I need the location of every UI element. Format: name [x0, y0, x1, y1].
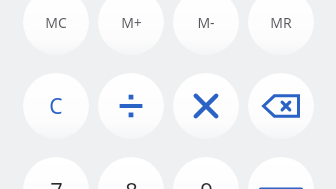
button[interactable]: M-	[173, 0, 239, 55]
staticText: MR	[270, 13, 292, 32]
button[interactable]: M+	[98, 0, 164, 55]
staticText: MC	[45, 13, 67, 32]
button[interactable]: 9	[173, 157, 239, 189]
staticText: M+	[121, 13, 142, 32]
staticText: C	[49, 92, 63, 121]
staticText: 8	[125, 175, 138, 189]
button[interactable]: Backspace	[248, 73, 314, 139]
button[interactable]: 8	[98, 157, 164, 189]
button[interactable]: C	[23, 73, 89, 139]
button[interactable]: Divide	[98, 73, 164, 139]
button[interactable]: MC	[23, 0, 89, 55]
button[interactable]: 7	[23, 157, 89, 189]
staticText: 7	[50, 175, 63, 189]
button[interactable]: MR	[248, 0, 314, 55]
staticText: 9	[200, 175, 213, 189]
staticText: M-	[197, 13, 215, 32]
button[interactable]: Multiply	[173, 73, 239, 139]
button[interactable]: Minus	[248, 157, 314, 189]
